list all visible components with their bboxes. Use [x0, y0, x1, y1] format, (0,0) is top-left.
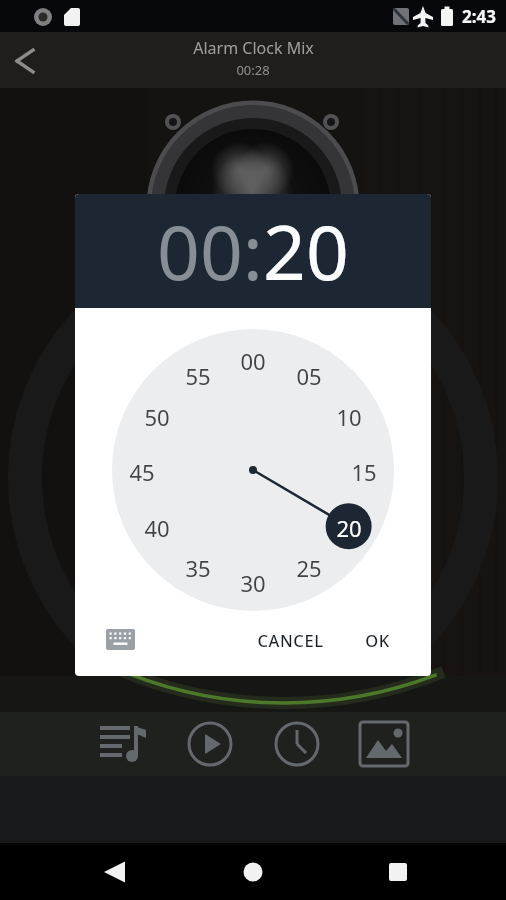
button[interactable]: 55 [176, 361, 220, 387]
staticText: 10 [336, 402, 362, 428]
staticText: 30 [240, 568, 266, 594]
button[interactable]: 15 [342, 457, 386, 483]
staticText: 00: [157, 200, 263, 302]
staticText: 25 [296, 553, 322, 579]
button[interactable]: CANCEL [241, 620, 339, 660]
staticText: 15 [351, 457, 377, 483]
staticText: OK [365, 629, 390, 651]
staticText: 00 [240, 346, 266, 372]
staticText: 2:43 [462, 5, 496, 28]
button[interactable] [223, 850, 283, 894]
button[interactable]: 50 [135, 402, 179, 428]
staticText: 05 [296, 361, 322, 387]
button[interactable]: 45 [120, 457, 164, 483]
button[interactable]: 10 [327, 402, 371, 428]
staticText: 20 [263, 200, 349, 302]
staticText: 45 [129, 457, 155, 483]
staticText: 40 [144, 513, 170, 539]
button[interactable] [356, 718, 412, 770]
staticText: 50 [144, 402, 170, 428]
button[interactable] [186, 720, 234, 768]
button[interactable]: 30 [231, 568, 275, 594]
button[interactable]: 05 [287, 361, 331, 387]
button[interactable] [94, 718, 150, 770]
button[interactable]: 00 [231, 346, 275, 372]
button[interactable] [6, 44, 46, 78]
button[interactable]: 35 [176, 553, 220, 579]
staticText: 20 [336, 513, 362, 539]
staticText: Alarm Clock Mix [193, 37, 314, 59]
button[interactable] [91, 617, 151, 663]
button[interactable]: 20 [327, 513, 371, 539]
button[interactable]: 40 [135, 513, 179, 539]
staticText: 55 [185, 361, 211, 387]
button[interactable]: OK [347, 620, 407, 660]
staticText: CANCEL [257, 629, 324, 651]
staticText: 00:28 [236, 61, 270, 79]
button[interactable]: 25 [287, 553, 331, 579]
button[interactable] [273, 720, 321, 768]
button[interactable] [368, 850, 428, 894]
button[interactable] [85, 850, 145, 894]
staticText: 35 [185, 553, 211, 579]
